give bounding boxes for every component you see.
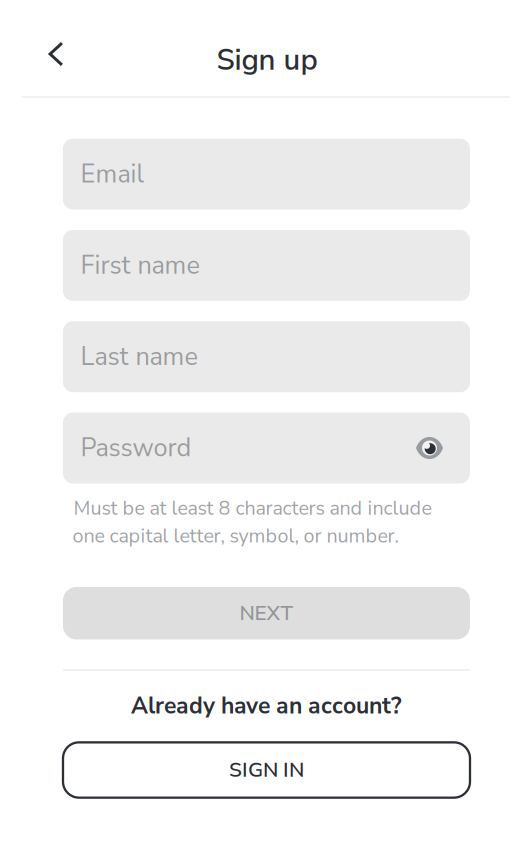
staticText: Already have an account?	[131, 690, 402, 722]
staticText: Sign up	[216, 40, 317, 80]
staticText: Must be at least 8 characters and includ…	[73, 495, 431, 522]
button[interactable]: Password	[63, 412, 470, 483]
button[interactable]: Show password	[405, 436, 443, 459]
button[interactable]: Email	[63, 139, 470, 210]
staticText: SIGN IN	[229, 756, 304, 784]
button[interactable]: SIGN IN	[63, 742, 470, 798]
button[interactable]: First name	[63, 230, 470, 301]
staticText: Last name	[80, 339, 197, 374]
button[interactable]: Last name	[63, 321, 470, 392]
staticText: Password	[80, 431, 191, 465]
staticText: one capital letter, symbol, or number.	[73, 522, 399, 549]
button[interactable]: Back	[33, 31, 79, 77]
staticText: Email	[80, 157, 143, 191]
staticText: First name	[80, 248, 199, 283]
staticText: NEXT	[239, 599, 293, 627]
button[interactable]: NEXT	[63, 587, 470, 639]
